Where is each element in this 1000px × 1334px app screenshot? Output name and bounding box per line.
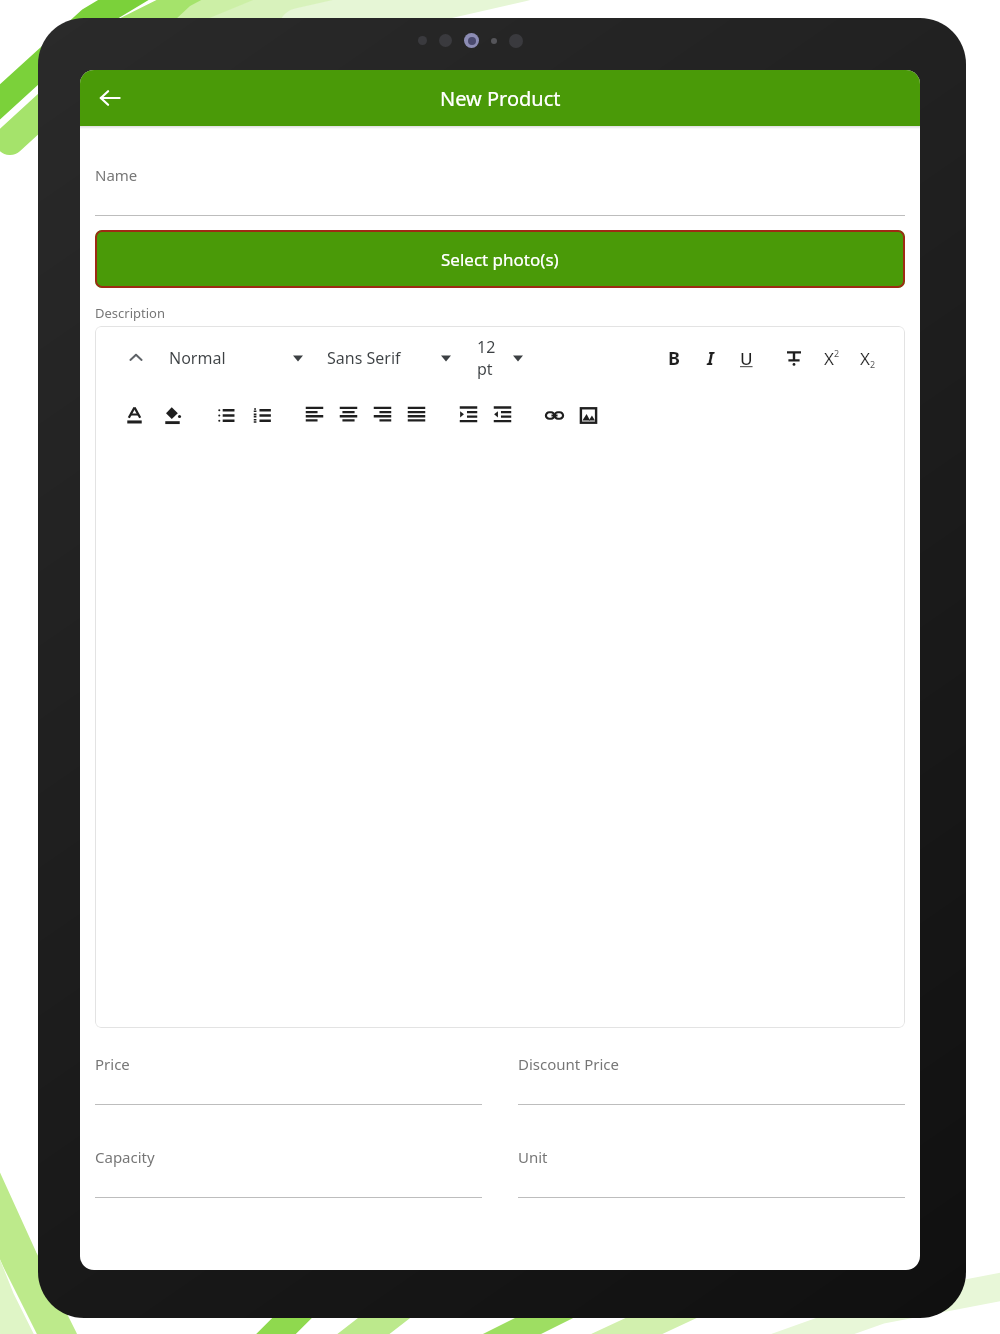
staticText: I [707, 346, 714, 371]
staticText: Capacity [95, 1147, 155, 1167]
staticText: Name [95, 165, 138, 185]
button[interactable]: Text color [119, 400, 149, 430]
button[interactable]: Superscript [817, 343, 847, 373]
button[interactable]: Collapse toolbar [121, 343, 151, 373]
button[interactable]: Underline [731, 343, 761, 373]
button[interactable]: Align right [367, 400, 397, 430]
button[interactable]: Select photo(s) [95, 230, 905, 288]
button[interactable]: Back [88, 76, 132, 120]
button[interactable]: Bulleted list [211, 400, 241, 430]
staticText: Price [95, 1054, 130, 1074]
button[interactable]: Decrease indent [487, 400, 517, 430]
button[interactable]: Sans Serif [327, 347, 453, 369]
button[interactable]: Discount Price [518, 1054, 905, 1105]
button[interactable]: Capacity [95, 1147, 482, 1198]
button[interactable]: Unit [518, 1147, 905, 1198]
staticText: Normal [169, 347, 226, 369]
button[interactable]: Subscript [853, 343, 883, 373]
button[interactable]: Align center [333, 400, 363, 430]
staticText: Discount Price [518, 1054, 619, 1074]
button[interactable]: Highlight color [157, 400, 187, 430]
button[interactable]: Name [95, 165, 905, 216]
staticText: Unit [518, 1147, 548, 1167]
button[interactable]: Insert link [539, 400, 569, 430]
button[interactable]: Price [95, 1054, 482, 1105]
staticText: Sans Serif [327, 347, 401, 369]
button[interactable]: Bold [659, 343, 689, 373]
button[interactable]: Align left [299, 400, 329, 430]
staticText: Select photo(s) [441, 248, 559, 271]
button[interactable]: Numbered list [247, 400, 277, 430]
staticText: 2 [870, 358, 876, 370]
button[interactable]: Italic [695, 343, 725, 373]
staticText: New Product [440, 85, 561, 112]
button[interactable]: Increase indent [453, 400, 483, 430]
button[interactable]: Strikethrough [779, 343, 809, 373]
staticText: Description [95, 304, 165, 322]
button[interactable]: 12 pt [477, 336, 525, 380]
staticText: 2 [834, 347, 840, 359]
staticText: 12 pt [477, 336, 511, 380]
staticText: X [824, 347, 834, 370]
button[interactable]: Insert image [573, 400, 603, 430]
staticText: U [740, 347, 753, 370]
staticText: B [668, 346, 680, 371]
button[interactable]: Justify [401, 400, 431, 430]
staticText: X [860, 347, 870, 370]
button[interactable]: Normal [169, 347, 305, 369]
